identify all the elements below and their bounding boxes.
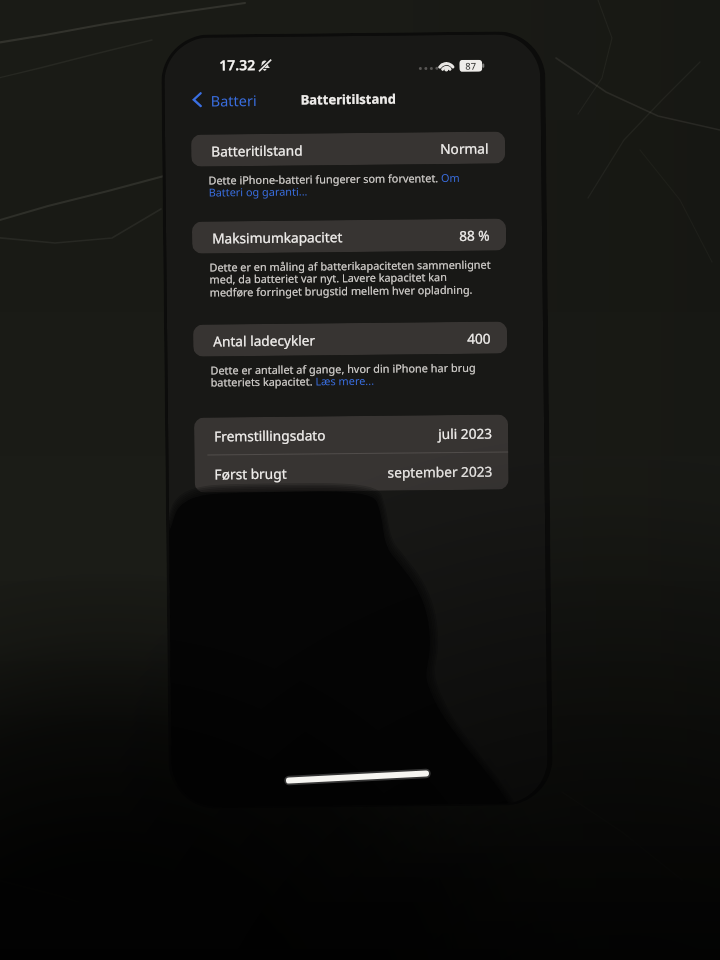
staticText: Maksimumkapacitet [212,227,343,247]
staticText: Antal ladecykler [213,330,316,350]
staticText: Normal [440,139,489,158]
staticText: juli 2023 [438,424,492,443]
staticText: 88 % [459,226,490,245]
staticText: september 2023 [387,462,493,482]
staticText: 400 [467,329,491,348]
button[interactable]: Maksimumkapacitet [192,218,506,254]
button[interactable]: Antal ladecykler [193,321,507,357]
button[interactable]: Først brugt [214,453,493,492]
staticText: Dette er antallet af gange, hvor din iPh… [210,359,508,389]
staticText: Batteri [210,90,257,110]
staticText: Dette er en måling af batterikapaciteten… [209,256,507,299]
staticText: 17.32 [219,55,255,74]
button[interactable]: Back to Batteri [192,89,257,110]
button[interactable]: Batteritilstand [191,131,505,167]
button[interactable]: Fremstillingsdato [214,415,492,454]
staticText: Dette iPhone-batteri fungerer som forven… [208,169,506,199]
staticText: Først brugt [214,464,287,483]
staticText: Batteritilstand [211,140,303,160]
staticText: 87 [465,60,476,72]
staticText: Fremstillingsdato [214,425,326,445]
staticText: Batteritilstand [300,90,397,109]
